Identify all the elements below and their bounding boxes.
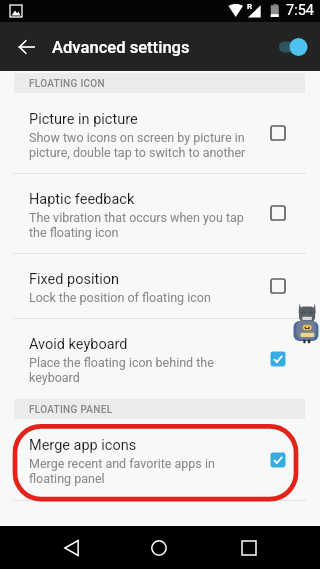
button[interactable]: Home bbox=[135, 526, 183, 569]
staticText: floating panel bbox=[29, 471, 105, 486]
staticText: Avoid keyboard bbox=[29, 336, 128, 353]
button[interactable]: Avoid keyboard bbox=[0, 318, 320, 399]
staticText: Haptic feedback bbox=[29, 191, 135, 208]
button[interactable]: Back bbox=[7, 22, 45, 71]
staticText: the floating icon bbox=[29, 225, 119, 240]
button[interactable]: Disabled bbox=[265, 273, 291, 299]
staticText: Show two icons on screen by picture in bbox=[29, 130, 245, 145]
button[interactable]: Merge app icons bbox=[0, 419, 320, 500]
staticText: The vibration that occurs when you tap bbox=[29, 210, 244, 225]
staticText: 7:54 bbox=[286, 2, 314, 19]
button[interactable]: Back bbox=[47, 526, 95, 569]
button[interactable]: Haptic feedback bbox=[0, 173, 320, 253]
staticText: FLOATING ICON bbox=[29, 78, 105, 90]
staticText: R bbox=[247, 2, 253, 11]
staticText: Advanced settings bbox=[52, 38, 190, 57]
staticText: Place the floating icon behind the bbox=[29, 355, 214, 370]
staticText: Picture in picture bbox=[29, 111, 138, 128]
staticText: keyboard bbox=[29, 370, 80, 385]
button[interactable]: Disabled bbox=[265, 120, 291, 146]
staticText: Lock the position of floating icon bbox=[29, 290, 211, 305]
button[interactable]: Disabled bbox=[265, 200, 291, 226]
button[interactable]: Recents bbox=[225, 526, 273, 569]
staticText: Merge recent and favorite apps in bbox=[29, 456, 215, 471]
staticText: Merge app icons bbox=[29, 437, 137, 454]
button[interactable]: Enabled bbox=[265, 447, 291, 473]
button[interactable]: Enable bbox=[272, 32, 312, 62]
staticText: FLOATING PANEL bbox=[29, 404, 113, 416]
button[interactable]: Picture in picture bbox=[0, 93, 320, 173]
staticText: Fixed position bbox=[29, 271, 120, 288]
staticText: picture, double tap to switch to another bbox=[29, 145, 246, 160]
button[interactable]: Enabled bbox=[265, 346, 291, 372]
button[interactable]: Fixed position bbox=[0, 253, 320, 318]
